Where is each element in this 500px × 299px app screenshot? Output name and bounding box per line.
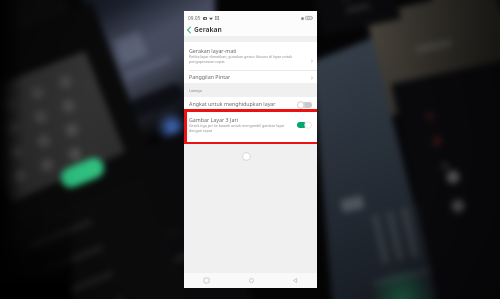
staticText: Gesek tiga jari ke bawah untuk mengambil…: [189, 123, 285, 128]
staticText: pengoperasian cepat.: [189, 59, 226, 64]
staticText: dengan cepat: [189, 128, 213, 133]
button[interactable]: Switch on: [297, 121, 312, 129]
staticText: Panggilan Pintar: [189, 73, 231, 80]
staticText: Gambar Layar 3 Jari: [189, 116, 238, 123]
button[interactable]: Back: [186, 24, 226, 35]
staticText: Angkat untuk menghidupkan layar: [189, 100, 276, 107]
button[interactable]: Open: [307, 56, 317, 66]
staticText: Ketika layar dimatikan, gunakan gestur k…: [189, 54, 293, 59]
staticText: Gerakan: [194, 25, 222, 34]
button[interactable]: Back: [273, 273, 317, 288]
button[interactable]: Open: [307, 73, 317, 83]
staticText: Lainnya: [189, 88, 203, 93]
staticText: 09.05: [188, 15, 201, 21]
button[interactable]: Recent apps: [184, 273, 229, 288]
staticText: Gerakan layar-mati: [189, 47, 237, 54]
button[interactable]: Switch off: [297, 101, 312, 109]
button[interactable]: Home: [229, 273, 273, 288]
